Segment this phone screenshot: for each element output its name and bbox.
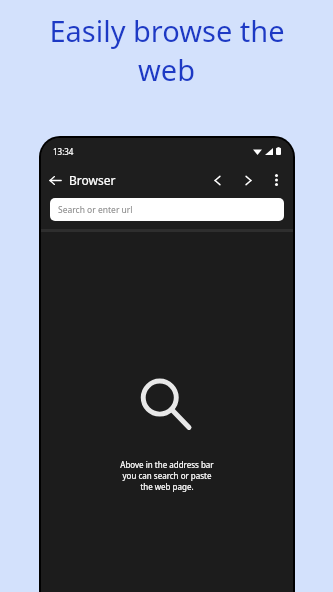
- staticText: Search or enter url: [58, 204, 133, 216]
- staticText: 13:34: [53, 146, 74, 157]
- button[interactable]: Search or enter url: [50, 198, 284, 221]
- button[interactable]: Navigate back: [204, 167, 230, 193]
- staticText: Above in the address bar you can search …: [120, 459, 214, 492]
- staticText: Browser: [69, 172, 116, 188]
- button[interactable]: Navigate forward: [235, 167, 261, 193]
- staticText: web: [138, 50, 195, 89]
- button[interactable]: More options: [263, 167, 289, 193]
- staticText: Easily browse the: [49, 11, 285, 50]
- button[interactable]: Back: [41, 166, 69, 194]
